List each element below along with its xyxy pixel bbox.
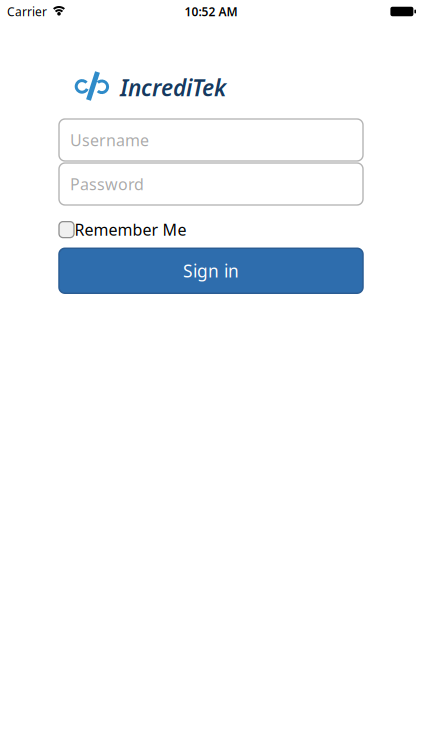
staticText: IncrediTek [120,72,226,102]
button[interactable]: Sign in [59,248,363,293]
staticText: Carrier [7,3,47,19]
secureTextField[interactable]: Password [70,173,363,195]
staticText: Remember Me [74,219,186,240]
staticText: Username [70,129,149,151]
staticText: Password [70,173,144,195]
button[interactable]: Remember Me [0,219,422,240]
staticText: 10:52 AM [184,3,237,19]
staticText: Username [70,129,149,151]
staticText: Password [70,173,144,195]
textField[interactable]: Username [70,129,363,151]
staticText: Sign in [183,259,239,282]
